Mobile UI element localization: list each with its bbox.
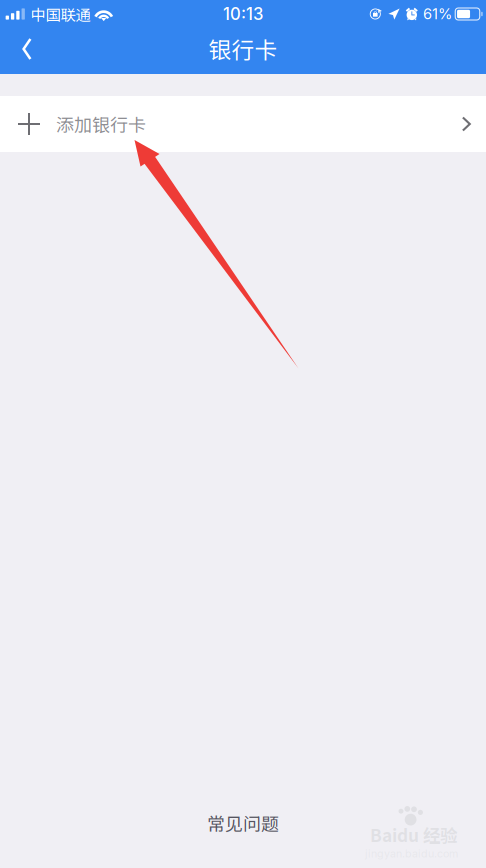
- staticText: 添加银行卡: [56, 111, 146, 137]
- staticText: Baidu 经验: [370, 822, 457, 847]
- staticText: 常见问题: [207, 810, 279, 836]
- button[interactable]: Back: [5, 28, 49, 74]
- button[interactable]: 常见问题: [0, 804, 486, 842]
- staticText: 银行卡: [208, 32, 277, 65]
- staticText: 中国联通: [30, 3, 90, 25]
- staticText: 61%: [423, 5, 452, 23]
- staticText: 10:13: [223, 4, 263, 24]
- button[interactable]: 添加银行卡: [0, 96, 486, 152]
